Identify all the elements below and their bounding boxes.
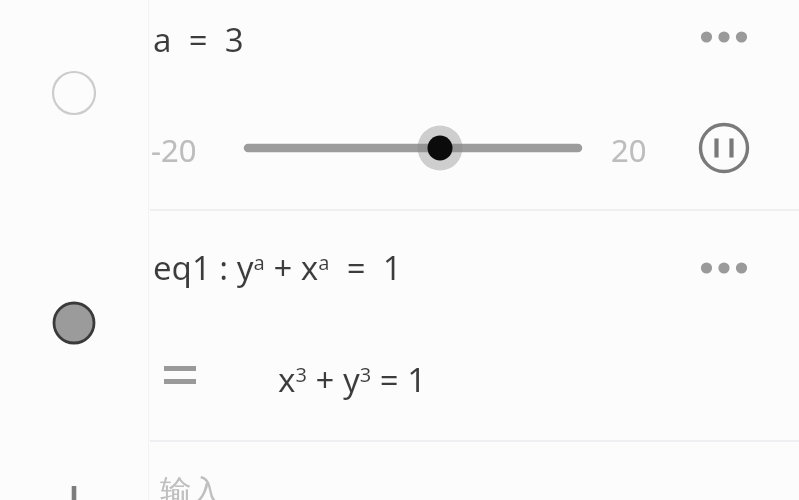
button[interactable]: 输入: [160, 472, 222, 500]
button[interactable]: More options for a: [696, 12, 752, 62]
button[interactable]: More options for eq1: [696, 243, 752, 293]
button[interactable]: Pause animation: [698, 122, 750, 174]
staticText: -20: [151, 129, 197, 171]
button[interactable]: Slider for a: [240, 120, 588, 176]
button[interactable]: Add expression: [48, 464, 100, 500]
button[interactable]: Toggle equation visibility: [51, 300, 97, 346]
button[interactable]: Toggle slider visibility: [51, 70, 97, 116]
staticText: 20: [611, 129, 647, 171]
staticText: eq1 : ya + xa = 1: [153, 245, 402, 290]
staticText: a = 3: [153, 17, 244, 62]
staticText: x3 + y3 = 1: [278, 357, 427, 402]
